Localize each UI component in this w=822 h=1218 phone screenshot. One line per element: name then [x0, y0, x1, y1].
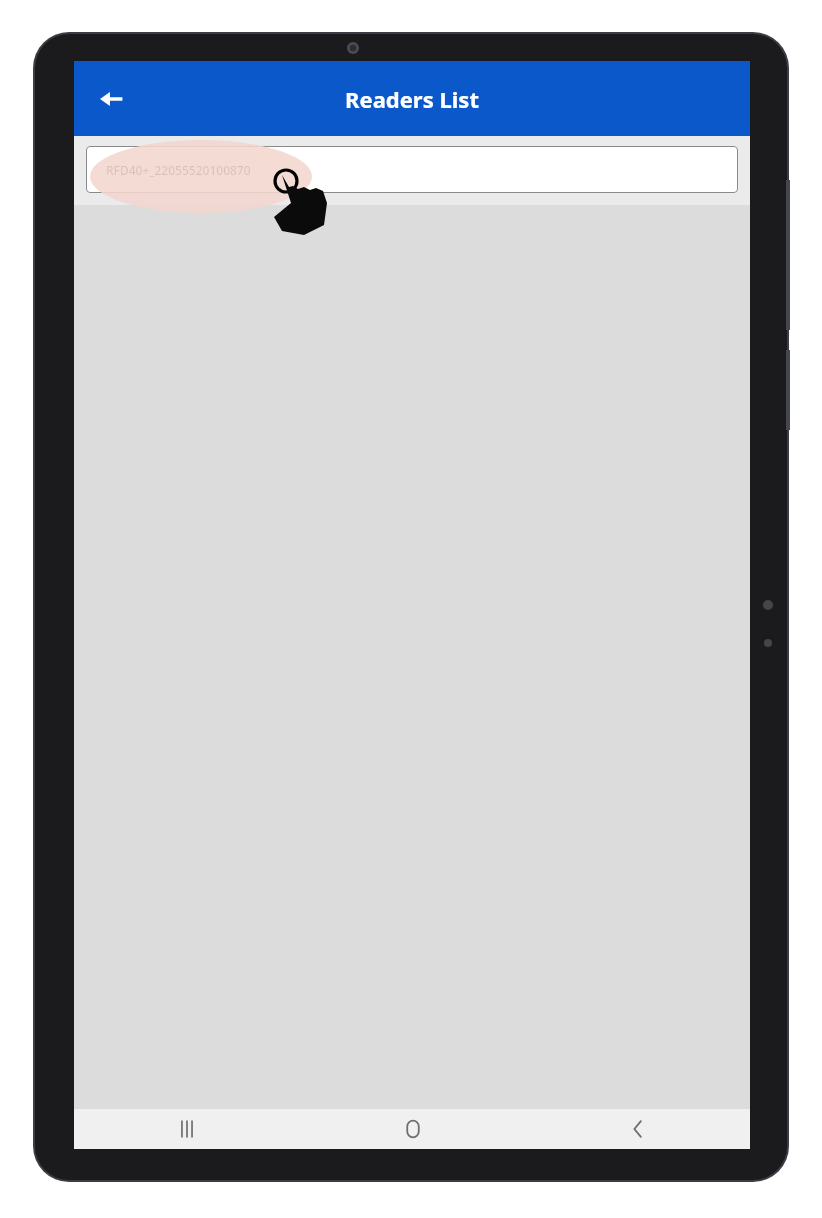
button[interactable]: Home — [300, 1109, 525, 1149]
staticText: Readers List — [345, 84, 479, 114]
button[interactable]: Back — [86, 73, 138, 125]
button[interactable]: RFD40+_22055520100870 — [86, 146, 738, 193]
button[interactable]: Back — [525, 1109, 750, 1149]
button[interactable]: Recent apps — [74, 1109, 300, 1149]
staticText: RFD40+_22055520100870 — [106, 162, 251, 178]
